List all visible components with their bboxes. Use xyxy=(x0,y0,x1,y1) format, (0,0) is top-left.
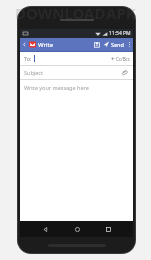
staticText: APK xyxy=(106,3,136,23)
staticText: Write your message here xyxy=(24,84,89,91)
button[interactable]: Attach file xyxy=(120,68,129,77)
staticText: Write xyxy=(38,41,54,49)
button[interactable]: Save draft xyxy=(91,38,102,51)
button[interactable]: Home xyxy=(70,222,84,236)
staticText: DOWNLOAD xyxy=(15,3,106,23)
button[interactable]: To: xyxy=(20,52,133,65)
button[interactable]: Write your message here xyxy=(20,80,133,221)
button[interactable]: Write xyxy=(38,38,91,51)
button[interactable]: More options xyxy=(125,38,133,51)
button[interactable]: Send xyxy=(102,38,125,51)
button[interactable]: Recent apps xyxy=(101,222,115,236)
staticText: Send xyxy=(111,41,124,48)
staticText: Cc/Bcc xyxy=(116,56,130,62)
button[interactable]: + xyxy=(111,55,130,63)
staticText: + xyxy=(111,55,115,63)
button[interactable]: Back xyxy=(38,222,52,236)
staticText: To: xyxy=(24,55,32,62)
button[interactable]: Navigate up xyxy=(20,38,29,51)
staticText: Subject xyxy=(24,69,43,76)
button[interactable]: Subject xyxy=(20,66,133,79)
staticText: 11:54 PM xyxy=(109,30,131,37)
